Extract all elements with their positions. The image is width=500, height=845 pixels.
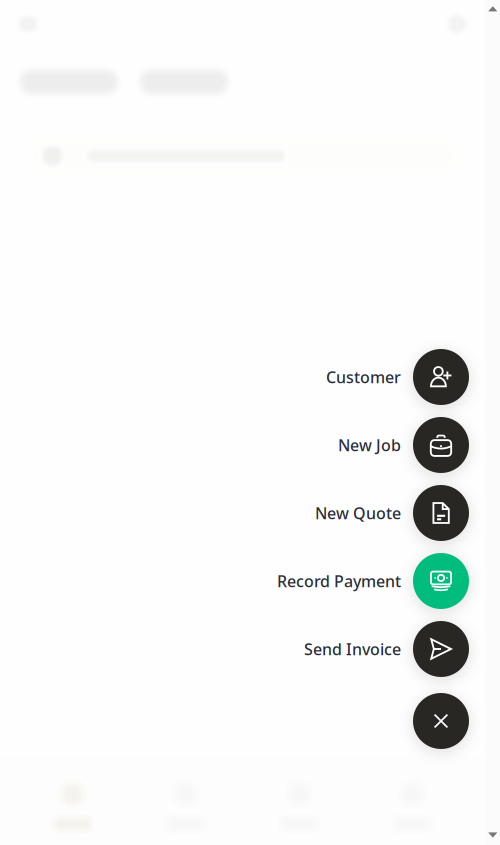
staticText: Send Invoice bbox=[304, 638, 401, 660]
staticText: New Quote bbox=[315, 502, 401, 524]
button[interactable]: Send Invoice bbox=[0, 621, 485, 677]
button[interactable]: Record Payment bbox=[0, 553, 485, 609]
button[interactable]: Customer bbox=[0, 349, 485, 405]
staticText: Record Payment bbox=[277, 570, 401, 592]
staticText: New Job bbox=[338, 434, 401, 456]
button[interactable]: Close menu bbox=[0, 693, 485, 749]
button[interactable]: New Job bbox=[0, 417, 485, 473]
staticText: Customer bbox=[326, 366, 401, 388]
button[interactable]: New Quote bbox=[0, 485, 485, 541]
